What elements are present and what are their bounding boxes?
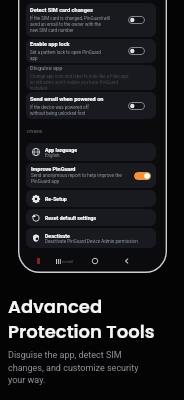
button[interactable]: Toggle on: [134, 172, 151, 180]
staticText: Detect SIM card changes: [30, 7, 93, 14]
staticText: Disguise app: [30, 65, 63, 72]
button[interactable]: App language: [26, 143, 156, 161]
staticText: Disguise the app, detect SIM changes, an…: [8, 350, 150, 385]
button[interactable]: Enable app lock: [26, 39, 156, 63]
staticText: English: [45, 153, 60, 158]
staticText: OTHERS: [27, 129, 43, 134]
button[interactable]: Home: [89, 255, 100, 266]
button[interactable]: Improve PinGuard: [26, 163, 156, 188]
staticText: Enable app lock: [30, 41, 70, 48]
button[interactable]: Toggle off: [128, 16, 145, 24]
staticText: Set a pattern lock to open PinGuard app: [30, 50, 101, 61]
staticText: Send email when powered on: [30, 96, 104, 103]
staticText: Reset default settings: [45, 215, 97, 221]
button[interactable]: Back: [121, 255, 132, 266]
button[interactable]: Deactivate: [26, 228, 156, 248]
button[interactable]: Re-Setup: [26, 190, 156, 207]
staticText: App language: [45, 147, 77, 153]
button[interactable]: Detect SIM card changes: [26, 3, 156, 37]
button[interactable]: Reset default settings: [26, 209, 156, 226]
staticText: Deactivate: [45, 233, 70, 239]
button[interactable]: Disguise app: [26, 65, 156, 90]
staticText: If the SIM card is changed, PinGuard wil…: [30, 16, 111, 33]
button[interactable]: Toggle off: [128, 47, 145, 55]
staticText: If the device was powered off without be…: [30, 105, 89, 116]
staticText: Improve PinGuard: [31, 166, 76, 172]
staticText: install: [62, 259, 74, 264]
staticText: Deactivate PinGuard Device Admin permiss…: [45, 239, 138, 244]
button[interactable]: Send email when powered on: [26, 92, 156, 119]
staticText: Advanced: [8, 294, 103, 319]
button[interactable]: Toggle off: [128, 102, 145, 110]
staticText: Send anonymous report to help improve th…: [31, 173, 130, 185]
staticText: Re-Setup: [45, 196, 67, 202]
button[interactable]: Recent apps: [56, 257, 74, 265]
staticText: Protection Tools: [8, 319, 155, 344]
staticText: Change app icon and label to look like a…: [30, 74, 129, 90]
